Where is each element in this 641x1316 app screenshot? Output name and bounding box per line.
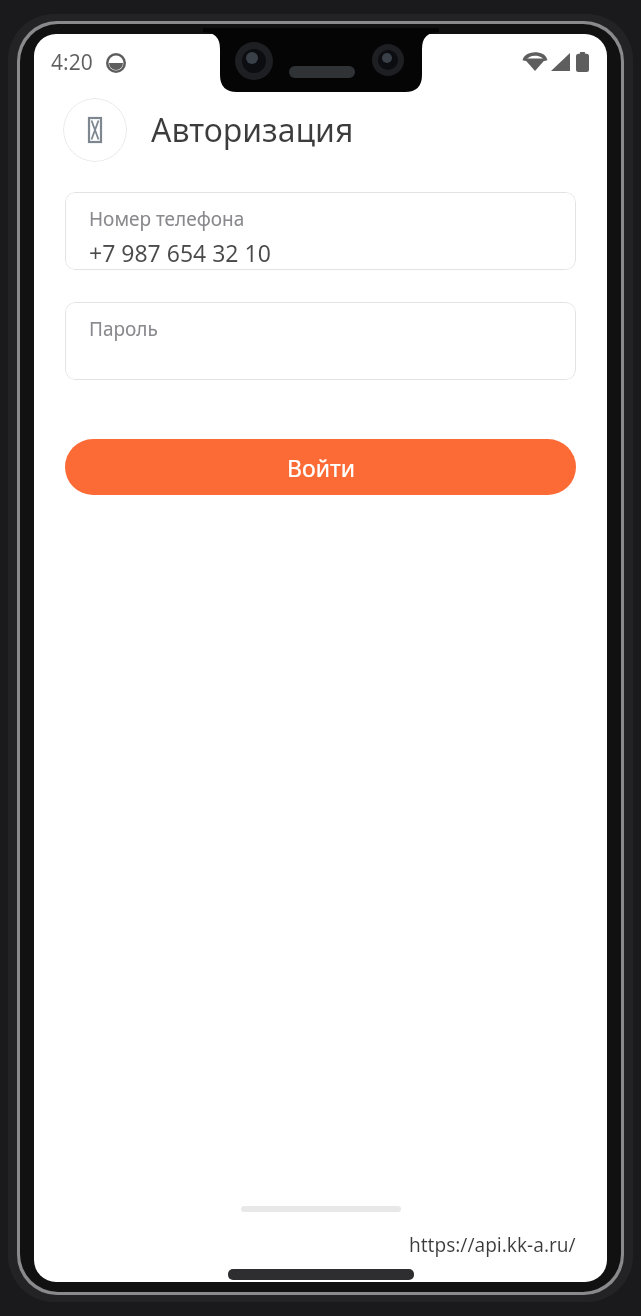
staticText: +7 987 654 32 10: [89, 237, 271, 268]
button[interactable]: Пароль: [65, 302, 576, 380]
staticText: Пароль: [89, 316, 158, 342]
button[interactable]: Войти: [65, 439, 576, 495]
button[interactable]: App logo: [63, 98, 127, 162]
staticText: Авторизация: [151, 108, 354, 152]
staticText: Войти: [287, 452, 355, 483]
staticText: 4:20: [51, 48, 93, 77]
staticText: https://api.kk-a.ru/: [409, 1232, 576, 1258]
staticText: Номер телефона: [89, 206, 245, 232]
button[interactable]: Номер телефона: [65, 192, 576, 270]
